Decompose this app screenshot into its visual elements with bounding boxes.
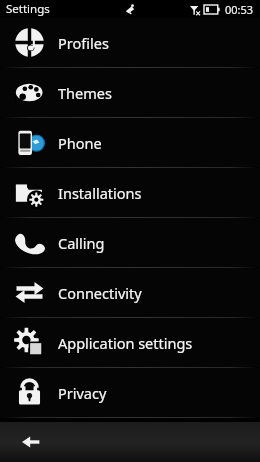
button[interactable]: Themes [0, 68, 260, 117]
button[interactable]: Calling [0, 218, 260, 267]
staticText: Privacy [58, 383, 107, 403]
staticText: 00:53 [225, 2, 254, 17]
button[interactable]: Privacy [0, 368, 260, 417]
staticText: Application settings [58, 333, 193, 353]
button[interactable]: Application settings [0, 318, 260, 367]
staticText: Profiles [58, 33, 109, 53]
staticText: Installations [58, 183, 142, 203]
staticText: Themes [58, 83, 112, 103]
button[interactable]: Installations [0, 168, 260, 217]
staticText: Phone [58, 133, 102, 153]
button[interactable]: Profiles [0, 18, 260, 67]
staticText: Connectivity [58, 283, 142, 303]
button[interactable]: Connectivity [0, 268, 260, 317]
staticText: Settings [6, 1, 50, 17]
button[interactable]: Back [14, 425, 48, 459]
button[interactable]: Phone [0, 118, 260, 167]
staticText: Calling [58, 233, 105, 253]
